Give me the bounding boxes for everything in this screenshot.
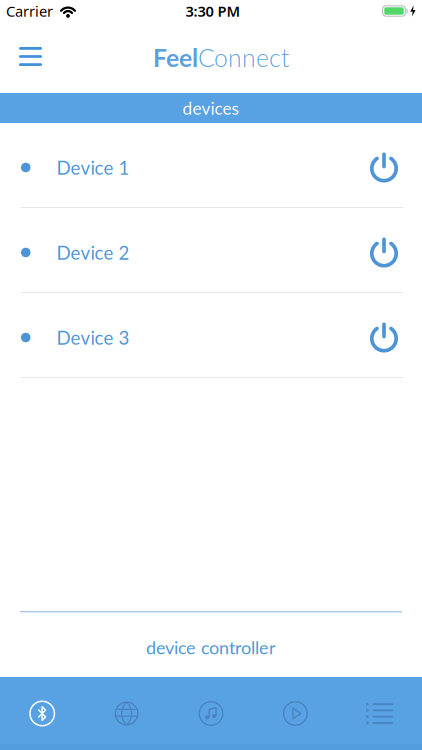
staticText: devices [182, 98, 239, 118]
button[interactable]: Device 2 [0, 208, 361, 292]
button[interactable]: Music [169, 677, 253, 750]
button[interactable]: Sessions [338, 677, 422, 750]
staticText: device controller [146, 636, 276, 658]
button[interactable]: Device 1 [0, 123, 361, 207]
staticText: FeelConnect [153, 43, 289, 72]
button[interactable]: device controller [146, 612, 276, 677]
staticText: 3:30 PM [185, 1, 240, 21]
staticText: Device 1 [56, 156, 129, 179]
button[interactable]: Menu [0, 40, 42, 75]
button[interactable]: Device 3 [0, 293, 361, 377]
staticText: Carrier [6, 1, 53, 21]
staticText: Device 2 [56, 241, 129, 264]
staticText: Device 3 [56, 326, 129, 349]
button[interactable]: Power [361, 293, 422, 377]
button[interactable]: Power [361, 123, 422, 207]
button[interactable]: Web [84, 677, 169, 750]
button[interactable]: Bluetooth devices [0, 677, 84, 750]
button[interactable]: Power [361, 208, 422, 292]
button[interactable]: Video [253, 677, 338, 750]
